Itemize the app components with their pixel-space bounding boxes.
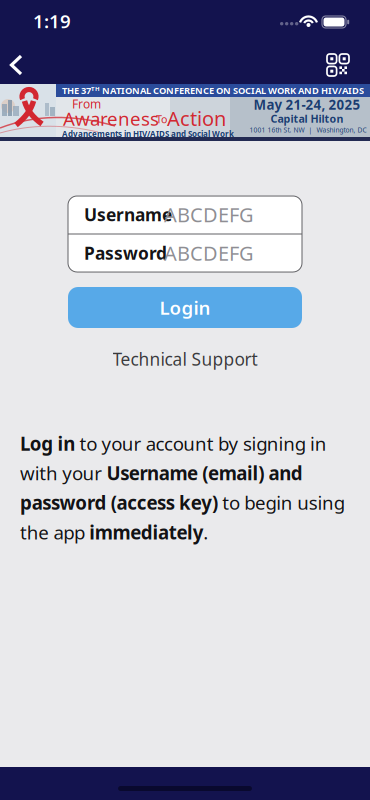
staticText: May 21-24, 2025 [253,96,360,113]
staticText: Action [167,105,226,132]
staticText: Username [84,203,172,226]
staticText: Technical Support [112,347,257,370]
staticText: ABCDEFG [164,240,254,266]
staticText: 1001 16th St. NW | Washington, DC [249,126,366,134]
staticText: Advancements in HIV/AIDS and Social Work [62,129,234,139]
button[interactable]: Login [68,287,302,328]
staticText: To [156,112,167,126]
button[interactable]: Password [68,234,302,271]
button[interactable]: Scan QR code [327,54,349,76]
staticText: THE 37ᵀᴴ NATIONAL CONFERENCE ON SOCIAL W… [62,84,364,97]
staticText: Capital Hilton [270,111,343,126]
staticText: ABCDEFG [164,201,254,228]
button[interactable]: Technical Support [85,348,285,370]
button[interactable]: Username [68,196,302,233]
staticText: Password [84,241,167,264]
staticText: From [72,96,101,112]
staticText: Log in to your account by signing in wit… [20,431,345,545]
staticText: 1:19 [33,9,71,33]
staticText: Login [159,295,210,320]
staticText: Awareness [63,106,159,131]
button[interactable]: Back [4,53,34,77]
